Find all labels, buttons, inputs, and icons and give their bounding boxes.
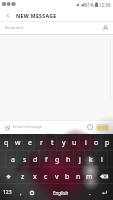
- staticText: n: [76, 172, 81, 182]
- staticText: a: [11, 155, 15, 165]
- staticText: c: [44, 172, 48, 182]
- staticText: o: [94, 138, 99, 148]
- staticText: z: [21, 172, 25, 182]
- button[interactable]: Attach file: [1, 121, 13, 133]
- staticText: l: [101, 155, 103, 165]
- button[interactable]: n: [73, 168, 84, 185]
- button[interactable]: a: [7, 151, 19, 168]
- button[interactable]: y: [58, 134, 69, 151]
- button[interactable]: .: [84, 185, 95, 200]
- staticText: x: [33, 172, 37, 182]
- button[interactable]: b: [62, 168, 73, 185]
- button[interactable]: e: [24, 134, 36, 151]
- staticText: Recipient: [5, 25, 24, 31]
- staticText: d: [33, 155, 38, 165]
- staticText: v: [55, 172, 59, 182]
- staticText: j: [79, 155, 81, 165]
- staticText: e: [28, 138, 32, 148]
- staticText: u: [72, 138, 77, 148]
- button[interactable]: ,: [15, 185, 26, 200]
- button[interactable]: Recipient: [0, 22, 113, 34]
- button[interactable]: u: [69, 134, 80, 151]
- staticText: s: [23, 155, 27, 165]
- staticText: t: [51, 138, 54, 148]
- button[interactable]: 123: [0, 185, 15, 200]
- button[interactable]: h: [63, 151, 74, 168]
- button[interactable]: Navigate up: [0, 9, 16, 21]
- button[interactable]: c: [40, 168, 51, 185]
- button[interactable]: m: [84, 168, 95, 185]
- button[interactable]: q: [0, 134, 12, 151]
- staticText: NEW MESSAGE: [16, 12, 57, 19]
- staticText: i: [85, 138, 87, 148]
- staticText: y: [62, 138, 66, 148]
- staticText: English: [53, 190, 69, 196]
- button[interactable]: z: [17, 168, 29, 185]
- button[interactable]: Insert emoji: [84, 121, 96, 133]
- staticText: 12:36: [99, 2, 111, 8]
- staticText: r: [40, 138, 43, 148]
- button[interactable]: v: [51, 168, 62, 185]
- staticText: q: [4, 138, 9, 148]
- button[interactable]: d: [30, 151, 41, 168]
- button[interactable]: Emoji keyboard: [26, 185, 38, 200]
- staticText: .: [89, 189, 91, 197]
- staticText: g: [55, 155, 60, 165]
- staticText: Enter message: [13, 124, 43, 130]
- button[interactable]: w: [12, 134, 24, 151]
- button[interactable]: Add recipient: [98, 22, 112, 34]
- button[interactable]: t: [47, 134, 58, 151]
- staticText: p: [105, 138, 110, 148]
- staticText: 123: [3, 189, 12, 196]
- button[interactable]: English: [38, 185, 84, 200]
- staticText: b: [65, 172, 70, 182]
- staticText: ,: [20, 189, 22, 197]
- button[interactable]: i: [80, 134, 91, 151]
- staticText: h: [66, 155, 71, 165]
- button[interactable]: j: [74, 151, 85, 168]
- button[interactable]: r: [36, 134, 47, 151]
- button[interactable]: f: [41, 151, 52, 168]
- staticText: m: [86, 172, 93, 182]
- button[interactable]: s: [19, 151, 30, 168]
- button[interactable]: Shift: [0, 168, 17, 185]
- staticText: w: [15, 138, 21, 148]
- button[interactable]: x: [29, 168, 40, 185]
- button[interactable]: k: [85, 151, 96, 168]
- button[interactable]: o: [91, 134, 102, 151]
- button[interactable]: Enter: [95, 185, 113, 200]
- button[interactable]: Send message: [96, 124, 109, 131]
- button[interactable]: g: [52, 151, 63, 168]
- button[interactable]: Backspace: [95, 168, 113, 185]
- button[interactable]: p: [102, 134, 113, 151]
- staticText: f: [45, 155, 48, 165]
- button[interactable]: l: [96, 151, 107, 168]
- staticText: 81%: [85, 2, 94, 8]
- staticText: k: [89, 155, 93, 165]
- staticText: SEND: [97, 125, 108, 130]
